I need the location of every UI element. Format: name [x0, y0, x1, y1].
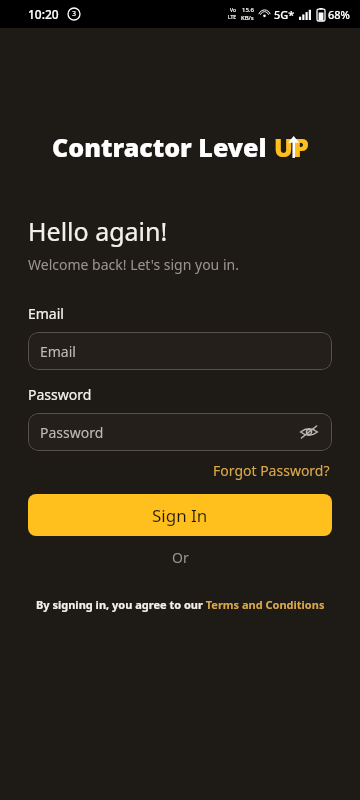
button[interactable]: Sign In [28, 494, 332, 536]
button[interactable]: Email [28, 332, 332, 370]
staticText: By signing in, you agree to our Terms an… [36, 597, 325, 612]
staticText: Vo [230, 7, 236, 14]
staticText: 5G* [274, 7, 295, 22]
staticText: Password [28, 385, 92, 404]
staticText: Hello again! [28, 214, 168, 248]
staticText: Email [28, 304, 64, 323]
staticText: UP [274, 130, 309, 164]
button[interactable]: Toggle password visibility [296, 419, 322, 445]
button[interactable]: By signing in, you agree to our Terms an… [28, 597, 332, 612]
staticText: Password [40, 423, 104, 442]
staticText: Forgot Password? [213, 461, 330, 480]
staticText: Sign In [152, 504, 208, 527]
staticText: Contractor Level [52, 130, 274, 164]
staticText: 15.6 [242, 6, 254, 14]
staticText: Welcome back! Let's sign you in. [28, 255, 239, 274]
staticText: Email [40, 342, 76, 361]
staticText: KB/s [241, 14, 254, 22]
button[interactable]: Forgot Password? [211, 459, 332, 482]
button[interactable]: Password [28, 413, 332, 451]
staticText: Or [172, 548, 189, 567]
staticText: 68% [328, 7, 350, 22]
staticText: LTE [228, 14, 237, 21]
staticText: 3 [72, 9, 77, 19]
staticText: 10:20 [28, 6, 59, 22]
